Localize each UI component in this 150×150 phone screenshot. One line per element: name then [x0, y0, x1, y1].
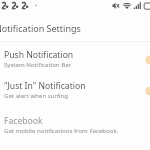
staticText: Facebook: [4, 115, 43, 127]
button[interactable]: Toggle Push Notification: [148, 54, 150, 66]
staticText: Get mobile notifications from Facebook.: [4, 126, 119, 134]
button[interactable]: Facebook: [0, 112, 150, 144]
staticText: Get alert when surfing: [4, 91, 69, 99]
button[interactable]: "Just In" Notification: [0, 77, 150, 109]
button[interactable]: Push Notification: [0, 46, 150, 78]
staticText: Notification Settings: [0, 22, 81, 34]
staticText: System Notification Bar: [4, 60, 72, 68]
button[interactable]: Toggle "Just In" Notification: [148, 85, 150, 97]
staticText: Push Notification: [4, 49, 74, 61]
button[interactable]: Notification Settings: [0, 12, 150, 40]
staticText: "Just In" Notification: [4, 80, 86, 92]
